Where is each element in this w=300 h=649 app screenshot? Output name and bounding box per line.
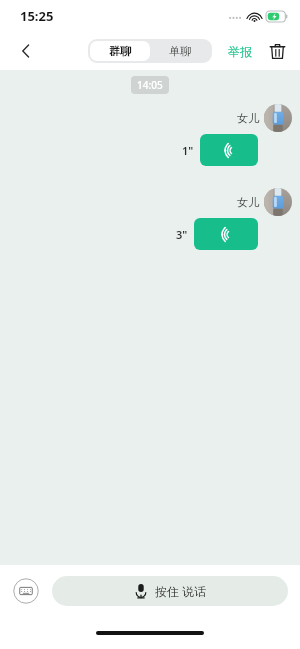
staticText: 群聊	[109, 44, 131, 58]
staticText: 14:05	[137, 78, 163, 92]
staticText: 按住 说话	[155, 583, 207, 599]
button[interactable]: Avatar	[264, 104, 292, 132]
staticText: 15:25	[20, 7, 54, 25]
button[interactable]: Avatar	[264, 188, 292, 216]
staticText: 女儿	[237, 195, 259, 209]
staticText: 举报	[228, 44, 252, 59]
button[interactable]: Back	[10, 35, 42, 67]
button[interactable]: Delete	[262, 36, 292, 66]
button[interactable]: 举报	[224, 40, 256, 63]
staticText: 1"	[182, 143, 194, 158]
staticText: 女儿	[237, 111, 259, 125]
button[interactable]: 按住 说话	[52, 576, 288, 606]
button[interactable]: Keyboard input	[12, 577, 40, 605]
staticText: 3"	[176, 227, 188, 242]
button[interactable]: 群聊	[90, 41, 150, 61]
button[interactable]: 单聊	[150, 41, 210, 61]
button[interactable]: Play voice message	[200, 134, 258, 166]
staticText: 单聊	[169, 44, 191, 58]
button[interactable]: Play voice message	[194, 218, 258, 250]
